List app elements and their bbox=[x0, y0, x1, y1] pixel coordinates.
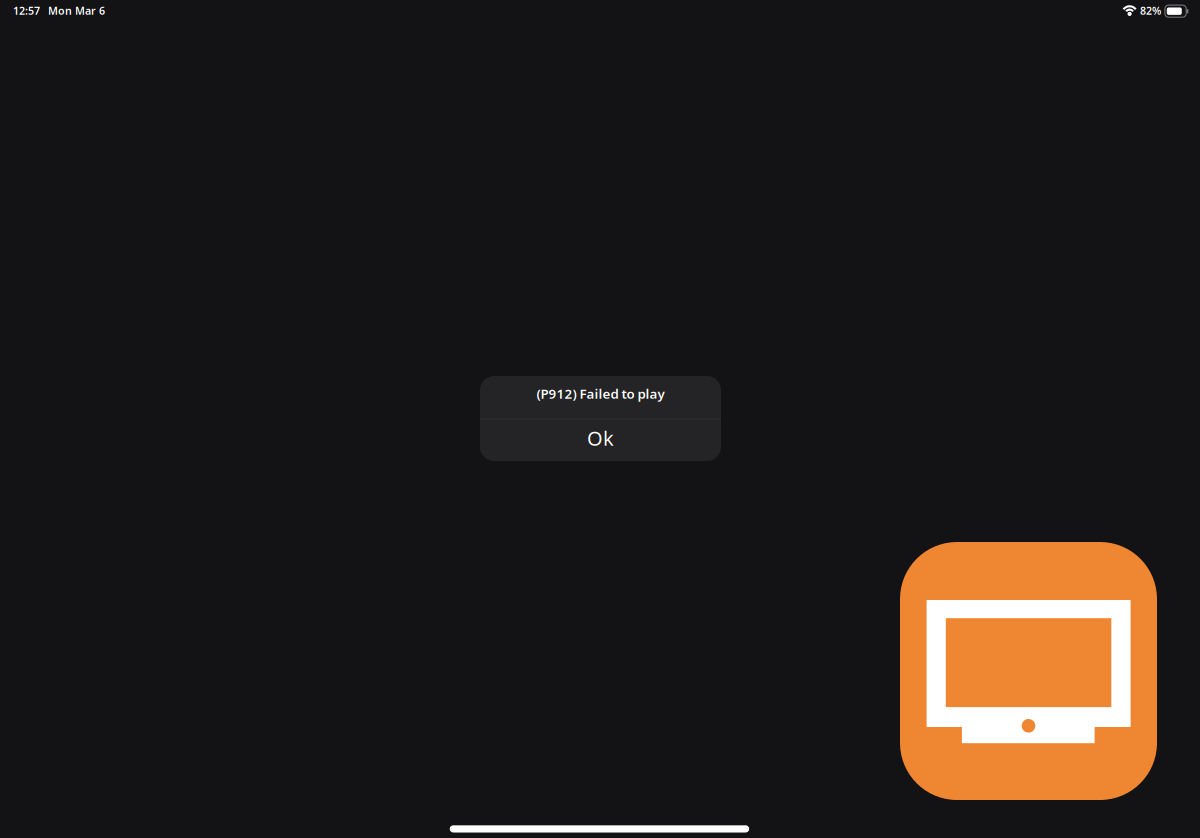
staticText: Mon Mar 6 bbox=[48, 4, 105, 18]
staticText: 82% bbox=[1140, 4, 1161, 18]
staticText: 12:57 bbox=[13, 4, 40, 18]
staticText: Ok bbox=[587, 425, 614, 451]
button[interactable]: Ok bbox=[480, 417, 721, 459]
button[interactable]: Open TV app bbox=[900, 542, 1157, 800]
staticText: (P912) Failed to play bbox=[536, 385, 664, 402]
